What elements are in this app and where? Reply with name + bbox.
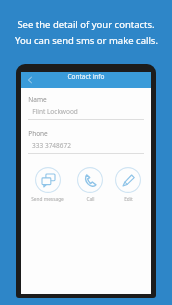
button[interactable]: Call: [75, 165, 105, 205]
staticText: You can send sms or make calls.: [15, 34, 158, 47]
staticText: Name: [28, 95, 47, 104]
button[interactable]: Send message: [29, 165, 66, 205]
staticText: Call: [86, 196, 95, 203]
staticText: Flint Lockwood: [32, 107, 78, 116]
button[interactable]: Name: [21, 95, 151, 120]
button[interactable]: Back: [24, 74, 36, 86]
staticText: Edit: [124, 196, 133, 203]
staticText: Phone: [28, 129, 48, 138]
button[interactable]: Phone: [21, 129, 151, 154]
staticText: Send message: [31, 196, 64, 203]
staticText: Contact info: [67, 72, 105, 81]
staticText: See the detail of your contacts.: [17, 18, 155, 31]
button[interactable]: Back: [21, 72, 151, 88]
staticText: 333 3748672: [32, 141, 71, 150]
button[interactable]: Edit: [113, 165, 143, 205]
